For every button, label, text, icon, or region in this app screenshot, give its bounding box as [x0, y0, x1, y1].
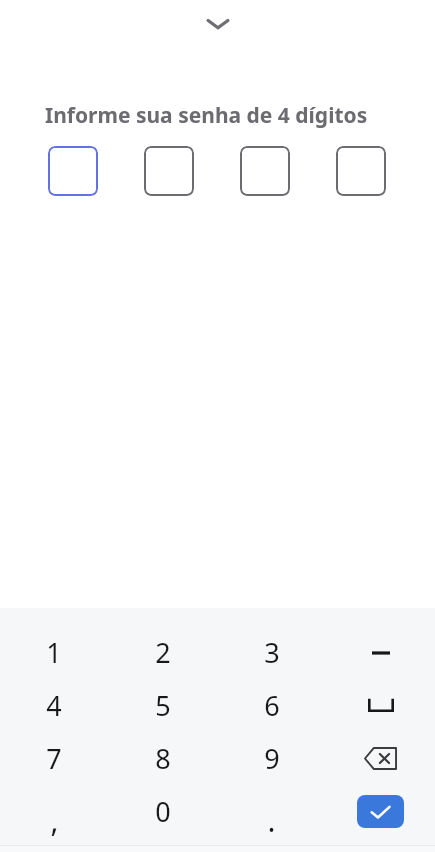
- button[interactable]: Espaço: [326, 679, 435, 732]
- button[interactable]: 1: [0, 626, 108, 679]
- button[interactable]: Dígito 3: [240, 146, 290, 196]
- staticText: 7: [46, 740, 62, 777]
- button[interactable]: 5: [108, 679, 217, 732]
- button[interactable]: Dígito 1: [48, 146, 98, 196]
- button[interactable]: 2: [108, 626, 217, 679]
- staticText: 4: [46, 687, 62, 724]
- staticText: 6: [264, 687, 280, 724]
- button[interactable]: Traço: [326, 626, 435, 679]
- staticText: 1: [46, 634, 62, 671]
- button[interactable]: 3: [217, 626, 326, 679]
- button[interactable]: 6: [217, 679, 326, 732]
- staticText: 9: [264, 740, 280, 777]
- staticText: ,: [50, 800, 59, 841]
- staticText: 2: [155, 634, 171, 671]
- button[interactable]: Apagar: [326, 732, 435, 785]
- button[interactable]: .: [217, 785, 326, 838]
- staticText: .: [267, 800, 276, 841]
- staticText: 8: [155, 740, 171, 777]
- staticText: 0: [155, 793, 171, 830]
- button[interactable]: 8: [108, 732, 217, 785]
- button[interactable]: Confirmar: [326, 785, 435, 838]
- staticText: 3: [264, 634, 280, 671]
- button[interactable]: 9: [217, 732, 326, 785]
- staticText: 5: [155, 687, 171, 724]
- button[interactable]: Dígito 2: [144, 146, 194, 196]
- button[interactable]: ,: [0, 785, 108, 838]
- button[interactable]: 4: [0, 679, 108, 732]
- button[interactable]: 0: [108, 785, 217, 838]
- staticText: Informe sua senha de 4 dígitos: [45, 101, 368, 130]
- button[interactable]: 7: [0, 732, 108, 785]
- button[interactable]: Fechar: [196, 2, 240, 46]
- button[interactable]: Dígito 4: [336, 146, 386, 196]
